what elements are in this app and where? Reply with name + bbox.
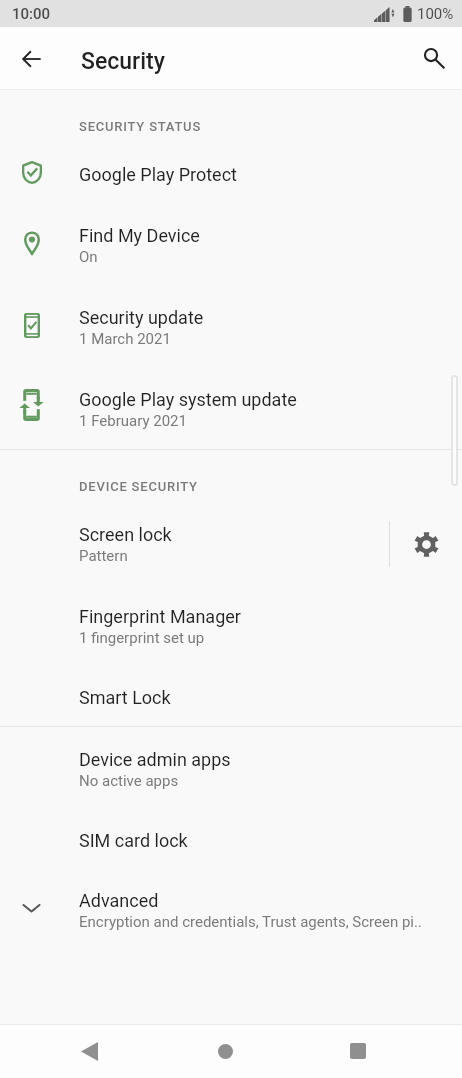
staticText: SECURITY STATUS	[79, 119, 202, 134]
button[interactable]: Smart Lock	[0, 667, 462, 727]
button[interactable]: Google Play system update	[0, 368, 462, 450]
button[interactable]: Fingerprint Manager	[0, 585, 462, 667]
staticText: 100%	[417, 5, 454, 23]
staticText: Advanced	[79, 890, 159, 911]
button[interactable]: Recent apps	[330, 1024, 386, 1078]
button[interactable]: Security update	[0, 286, 462, 368]
staticText: Device admin apps	[79, 749, 231, 770]
staticText: 1 March 2021	[79, 330, 171, 348]
staticText: Encryption and credentials, Trust agents…	[79, 913, 422, 931]
staticText: On	[79, 248, 98, 266]
button[interactable]: Back	[8, 35, 55, 82]
staticText: Security	[81, 48, 165, 75]
button[interactable]: Screen lock settings	[390, 503, 462, 585]
staticText: No active apps	[79, 772, 179, 790]
staticText: 1 fingerprint set up	[79, 629, 205, 647]
staticText: SIM card lock	[79, 830, 188, 851]
button[interactable]: Search	[410, 34, 457, 81]
button[interactable]: Advanced	[0, 869, 462, 951]
button[interactable]: Device admin apps	[0, 728, 462, 810]
staticText: Screen lock	[79, 524, 172, 545]
staticText: Google Play system update	[79, 389, 297, 410]
button[interactable]: SIM card lock	[0, 809, 462, 871]
staticText: Smart Lock	[79, 687, 171, 708]
staticText: 10:00	[12, 5, 51, 23]
staticText: Google Play Protect	[79, 164, 237, 185]
staticText: 1 February 2021	[79, 412, 187, 430]
button[interactable]: Find My Device	[0, 204, 462, 286]
staticText: DEVICE SECURITY	[79, 479, 198, 494]
staticText: Security update	[79, 307, 204, 328]
button[interactable]: Home	[197, 1024, 253, 1078]
button[interactable]: Back	[61, 1024, 117, 1078]
button[interactable]: Screen lock	[0, 503, 389, 585]
staticText: Fingerprint Manager	[79, 606, 241, 627]
staticText: Find My Device	[79, 225, 200, 246]
staticText: Pattern	[79, 547, 128, 565]
button[interactable]: Google Play Protect	[0, 144, 462, 204]
